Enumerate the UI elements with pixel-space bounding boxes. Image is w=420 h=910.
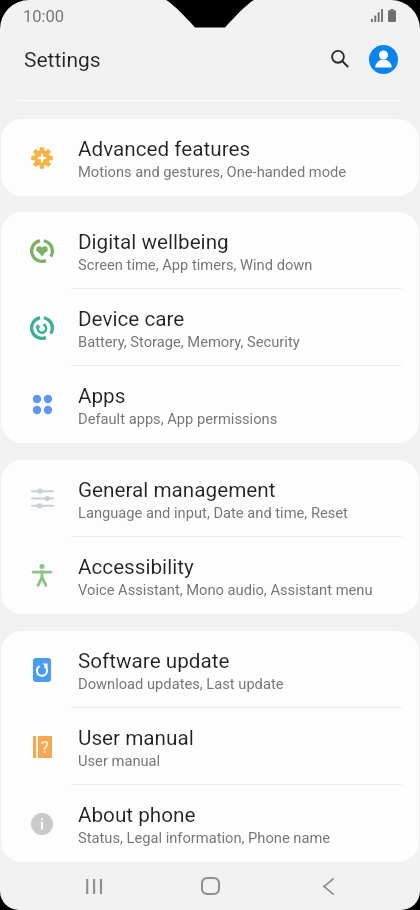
staticText: User manual bbox=[78, 752, 161, 769]
staticText: Voice Assistant, Mono audio, Assistant m… bbox=[78, 581, 373, 598]
staticText: Accessibility bbox=[78, 555, 194, 579]
button[interactable]: Digital wellbeing bbox=[1, 212, 419, 289]
staticText: Settings bbox=[24, 48, 101, 73]
button[interactable]: Back bbox=[305, 863, 351, 909]
staticText: Battery, Storage, Memory, Security bbox=[78, 333, 300, 350]
staticText: Status, Legal information, Phone name bbox=[78, 829, 331, 846]
staticText: Advanced features bbox=[78, 137, 251, 161]
button[interactable]: Advanced features bbox=[1, 119, 419, 196]
staticText: Download updates, Last update bbox=[78, 675, 284, 692]
button[interactable]: Accessibility bbox=[1, 537, 419, 614]
staticText: Default apps, App permissions bbox=[78, 410, 278, 427]
staticText: Screen time, App timers, Wind down bbox=[78, 256, 313, 273]
staticText: Software update bbox=[78, 649, 230, 673]
button[interactable]: Search bbox=[318, 37, 360, 79]
button[interactable]: About phone bbox=[1, 785, 419, 862]
button[interactable]: Account bbox=[362, 38, 404, 80]
button[interactable]: ? bbox=[1, 708, 419, 785]
button[interactable]: Recent apps bbox=[70, 863, 116, 909]
staticText: About phone bbox=[78, 803, 196, 827]
staticText: 10:00 bbox=[23, 7, 65, 26]
staticText: Motions and gestures, One-handed mode bbox=[78, 163, 347, 180]
button[interactable]: Home bbox=[187, 863, 233, 909]
button[interactable]: Apps bbox=[1, 366, 419, 443]
button[interactable]: Software update bbox=[1, 631, 419, 708]
staticText: Device care bbox=[78, 307, 185, 331]
button[interactable]: Device care bbox=[1, 289, 419, 366]
staticText: Language and input, Date and time, Reset bbox=[78, 504, 348, 521]
button[interactable]: General management bbox=[1, 460, 419, 537]
staticText: Apps bbox=[78, 384, 126, 408]
staticText: General management bbox=[78, 478, 276, 502]
staticText: User manual bbox=[78, 726, 194, 750]
staticText: Digital wellbeing bbox=[78, 230, 229, 254]
staticText: ? bbox=[41, 738, 49, 757]
